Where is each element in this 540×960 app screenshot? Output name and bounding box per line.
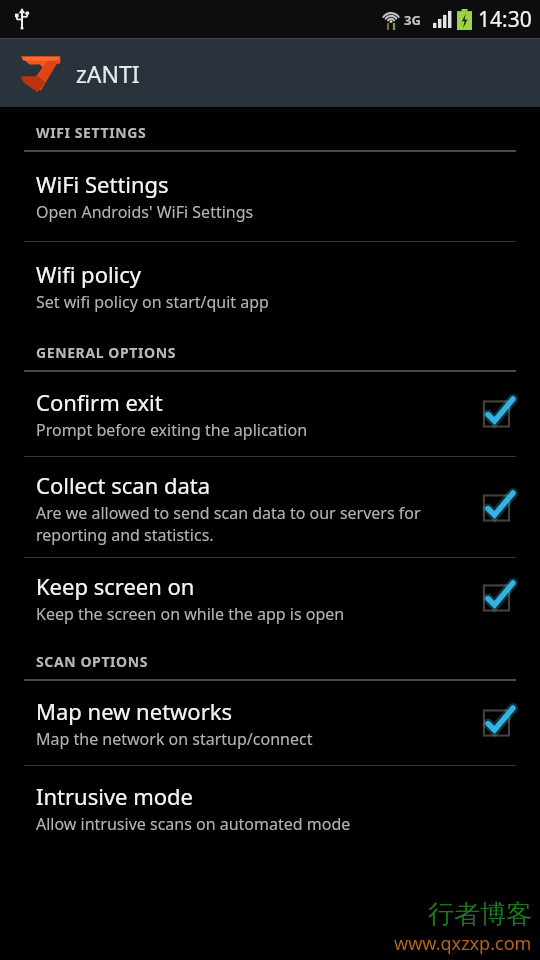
button[interactable]: Collect scan data bbox=[476, 486, 520, 530]
staticText: WIFI SETTINGS bbox=[36, 123, 147, 142]
staticText: zANTI bbox=[76, 58, 140, 89]
button[interactable]: Confirm exit bbox=[476, 392, 520, 436]
staticText: Allow intrusive scans on automated mode bbox=[36, 813, 351, 835]
staticText: WiFi Settings bbox=[36, 169, 169, 199]
button[interactable]: Map new networks bbox=[476, 701, 520, 745]
staticText: Map the network on startup/connect bbox=[36, 728, 313, 750]
button[interactable]: Keep screen on bbox=[476, 576, 520, 620]
button[interactable]: Map new networks bbox=[0, 681, 540, 765]
button[interactable]: Collect scan data bbox=[0, 457, 540, 557]
staticText: Prompt before exiting the aplication bbox=[36, 419, 308, 441]
staticText: 14:30 bbox=[478, 5, 532, 34]
staticText: Keep screen on bbox=[36, 571, 195, 601]
staticText: Collect scan data bbox=[36, 470, 211, 500]
staticText: Open Androids' WiFi Settings bbox=[36, 201, 254, 223]
button[interactable]: Keep screen on bbox=[0, 558, 540, 636]
staticText: Confirm exit bbox=[36, 387, 163, 417]
button[interactable]: zANTI bbox=[0, 39, 540, 107]
staticText: www.qxzxp.com bbox=[394, 931, 532, 956]
button[interactable]: WiFi Settings bbox=[0, 152, 540, 241]
staticText: Keep the screen on while the app is open bbox=[36, 603, 345, 625]
staticText: Map new networks bbox=[36, 696, 233, 726]
staticText: Set wifi policy on start/quit app bbox=[36, 291, 269, 313]
staticText: Intrusive mode bbox=[36, 781, 194, 811]
staticText: 行者博客 bbox=[428, 898, 532, 931]
staticText: Are we allowed to send scan data to our … bbox=[36, 502, 468, 546]
button[interactable]: Confirm exit bbox=[0, 372, 540, 456]
staticText: Wifi policy bbox=[36, 259, 142, 289]
button[interactable]: Wifi policy bbox=[0, 242, 540, 327]
staticText: SCAN OPTIONS bbox=[36, 652, 149, 671]
staticText: 3G bbox=[404, 11, 421, 29]
button[interactable]: Intrusive mode bbox=[0, 766, 540, 850]
staticText: GENERAL OPTIONS bbox=[36, 343, 176, 362]
